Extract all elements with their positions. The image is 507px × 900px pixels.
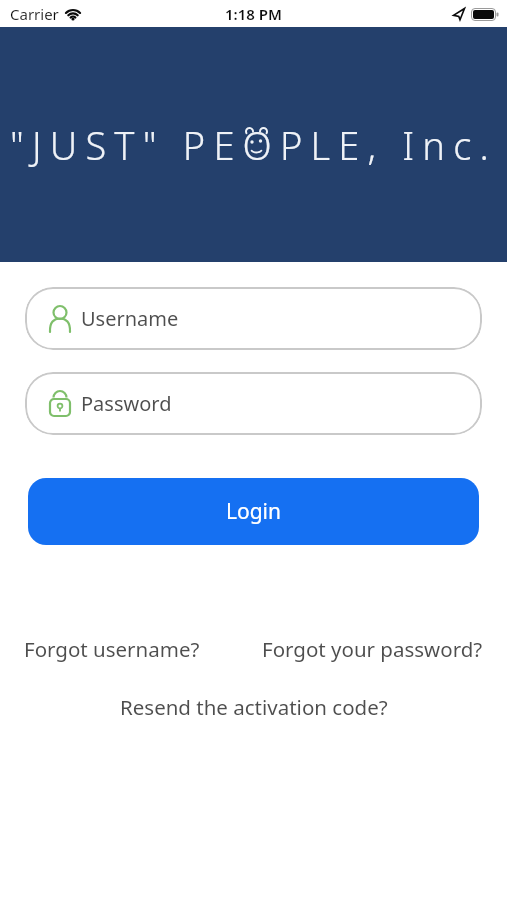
button[interactable]: Password [25, 372, 482, 435]
button[interactable]: Username [25, 287, 482, 350]
staticText: Password [81, 390, 172, 417]
staticText: "JUST" PEOPLE, Inc. [10, 119, 497, 171]
staticText: 1:18 PM [225, 4, 282, 24]
button[interactable]: Login [28, 478, 479, 545]
staticText: Login [226, 497, 282, 526]
button[interactable]: Forgot username? [24, 635, 200, 663]
staticText: Carrier [10, 4, 59, 24]
staticText: Username [81, 305, 179, 332]
button[interactable]: Resend the activation code? [120, 693, 388, 721]
button[interactable]: Forgot your password? [262, 635, 483, 663]
